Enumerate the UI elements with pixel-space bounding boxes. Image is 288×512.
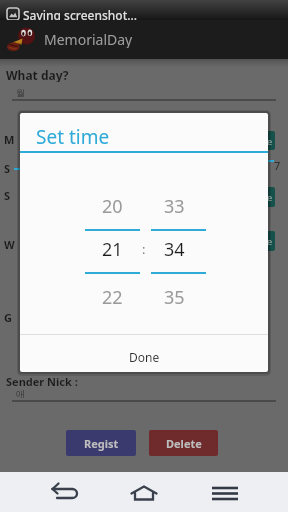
- staticText: MemorialDay: [44, 30, 133, 48]
- staticText: :: [142, 240, 146, 258]
- button[interactable]: e: [257, 187, 275, 207]
- staticText: S: [4, 188, 11, 202]
- button[interactable]: 35: [144, 283, 204, 311]
- staticText: Saving screenshot...: [23, 7, 138, 23]
- button[interactable]: 21: [82, 235, 142, 263]
- button[interactable]: Regist: [66, 430, 136, 456]
- staticText: Done: [129, 349, 160, 365]
- staticText: 21: [102, 237, 123, 262]
- staticText: What day?: [6, 67, 69, 82]
- button[interactable]: 20: [82, 192, 142, 220]
- staticText: 7: [274, 158, 281, 172]
- staticText: 22: [102, 285, 123, 310]
- staticText: 33: [164, 194, 185, 219]
- staticText: e: [267, 135, 275, 147]
- button[interactable]: 33: [144, 192, 204, 220]
- staticText: 20: [102, 194, 123, 219]
- staticText: Set time: [36, 124, 110, 150]
- staticText: S: [4, 161, 11, 175]
- button[interactable]: Delete: [149, 430, 218, 456]
- staticText: e: [267, 235, 275, 247]
- button[interactable]: [202, 472, 242, 512]
- staticText: Delete: [166, 436, 202, 451]
- staticText: e: [267, 191, 275, 203]
- button[interactable]: e: [257, 131, 275, 150]
- staticText: 34: [164, 237, 185, 262]
- staticText: W: [4, 237, 15, 251]
- staticText: M: [4, 132, 15, 146]
- staticText: 월: [16, 87, 25, 98]
- button[interactable]: 34: [144, 235, 204, 263]
- staticText: 35: [164, 285, 185, 310]
- staticText: G: [4, 310, 12, 324]
- button[interactable]: [46, 472, 86, 512]
- staticText: Regist: [84, 436, 119, 451]
- staticText: 애: [16, 388, 25, 399]
- staticText: Sender Nick :: [6, 374, 78, 387]
- button[interactable]: e: [257, 231, 275, 251]
- button[interactable]: 22: [82, 283, 142, 311]
- button[interactable]: [124, 472, 164, 512]
- button[interactable]: Done: [20, 341, 268, 372]
